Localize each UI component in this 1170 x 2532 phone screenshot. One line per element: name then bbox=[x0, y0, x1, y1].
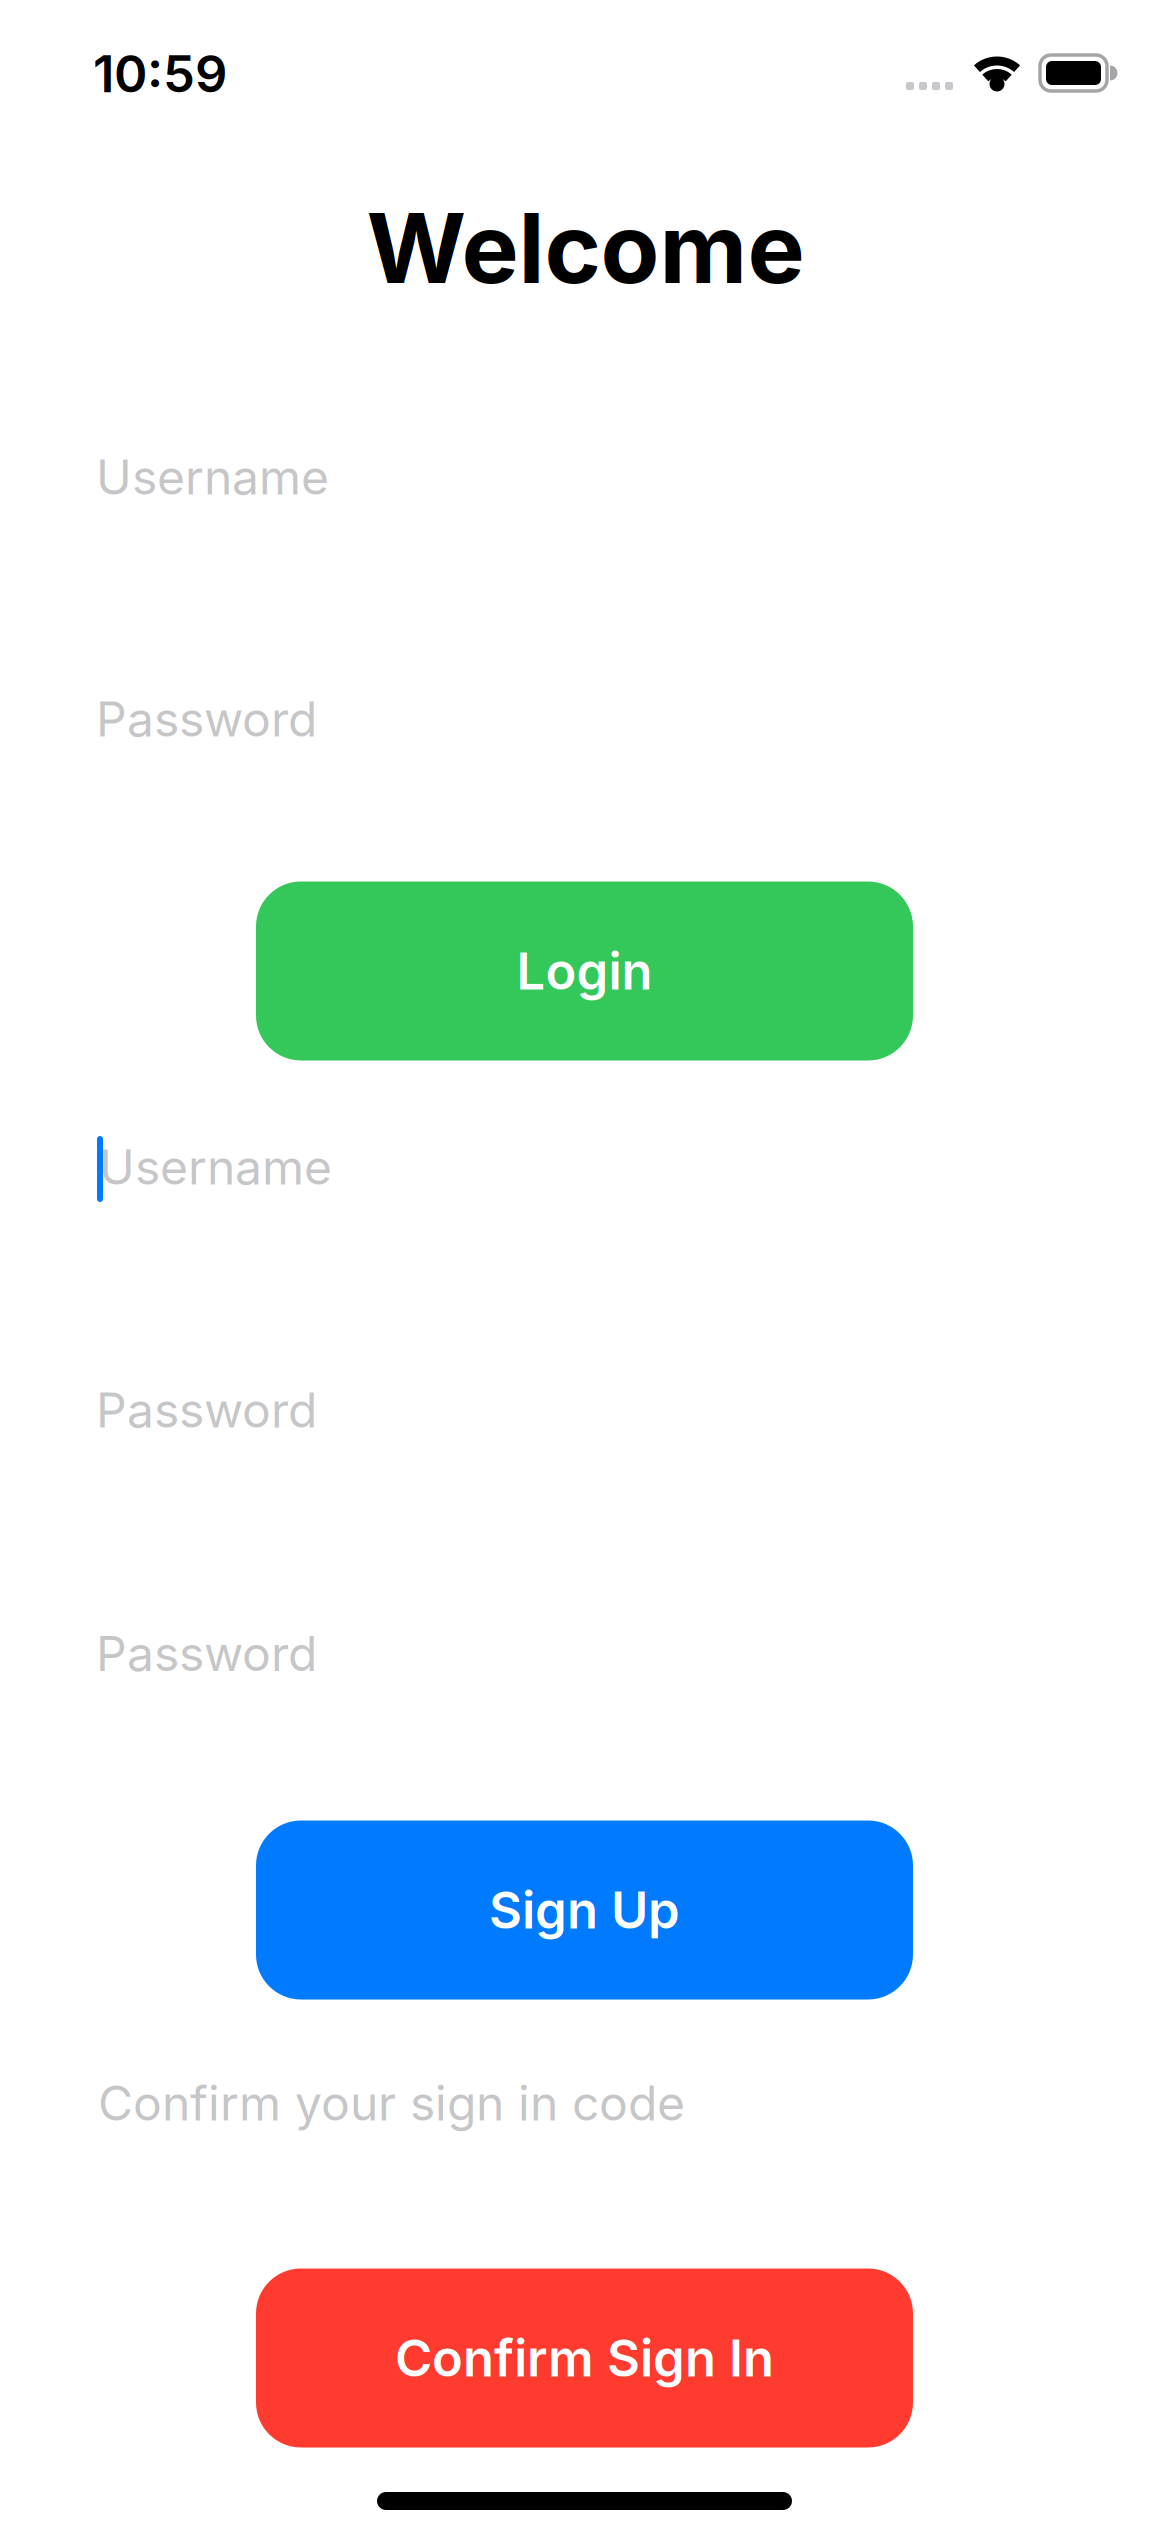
button[interactable]: Confirm Sign In bbox=[256, 2268, 913, 2447]
button[interactable]: Username bbox=[96, 422, 1070, 532]
staticText: Confirm your sign in code bbox=[98, 2075, 685, 2131]
staticText: 10:59 bbox=[93, 44, 227, 104]
staticText: Password bbox=[96, 1625, 317, 1682]
button[interactable]: Password bbox=[96, 1355, 1070, 1465]
staticText: Welcome bbox=[366, 191, 804, 305]
button[interactable]: Username bbox=[99, 1112, 1073, 1222]
staticText: Sign Up bbox=[489, 1880, 680, 1940]
staticText: Username bbox=[96, 449, 329, 505]
button[interactable]: Password bbox=[96, 1598, 1070, 1708]
staticText: Login bbox=[516, 941, 652, 1001]
button[interactable]: Login bbox=[256, 881, 913, 1060]
staticText: Username bbox=[99, 1139, 332, 1195]
staticText: Password bbox=[96, 691, 317, 747]
button[interactable]: Password bbox=[96, 664, 1070, 774]
button[interactable]: Confirm your sign in code bbox=[98, 2048, 1070, 2158]
staticText: Confirm Sign In bbox=[395, 2328, 774, 2388]
staticText: Password bbox=[96, 1382, 317, 1438]
button[interactable]: Sign Up bbox=[256, 1820, 913, 1999]
